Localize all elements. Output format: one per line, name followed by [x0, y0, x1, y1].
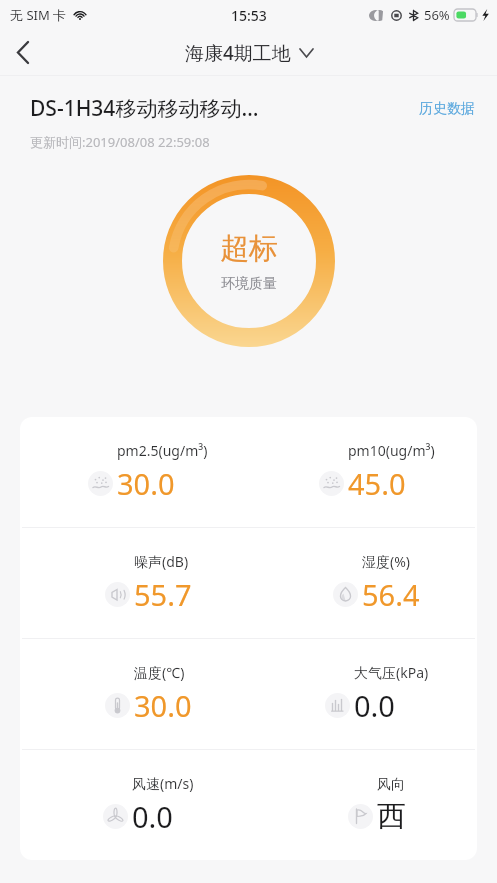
staticText: 0.0 — [132, 797, 173, 836]
button[interactable]: 海康4期工地 — [185, 40, 313, 66]
staticText: 历史数据 — [419, 100, 475, 118]
staticText: 无 SIM 卡 — [10, 6, 67, 24]
button[interactable]: 风向 — [248, 750, 477, 860]
staticText: 15:53 — [231, 6, 267, 25]
staticText: 0.0 — [354, 686, 395, 725]
staticText: pm10(ug/m³) — [348, 441, 435, 460]
staticText: 30.0 — [134, 686, 192, 725]
staticText: 45.0 — [348, 464, 406, 503]
button[interactable]: pm2.5(ug/m³) — [20, 417, 248, 527]
button[interactable]: Back — [0, 30, 46, 75]
button[interactable]: 温度(℃) — [20, 639, 248, 749]
staticText: 超标 — [220, 230, 278, 267]
staticText: 风速(m/s) — [132, 774, 194, 793]
staticText: pm2.5(ug/m³) — [117, 441, 208, 460]
button[interactable]: 噪声(dB) — [20, 528, 248, 638]
staticText: 海康4期工地 — [185, 40, 291, 66]
staticText: 更新时间:2019/08/08 22:59:08 — [30, 133, 210, 151]
staticText: 55.7 — [134, 575, 192, 614]
button[interactable]: 湿度(%) — [248, 528, 477, 638]
staticText: 56.4 — [362, 575, 420, 614]
button[interactable]: 大气压(kPa) — [248, 639, 477, 749]
staticText: 56% — [424, 6, 450, 24]
staticText: 噪声(dB) — [134, 552, 189, 571]
button[interactable]: 风速(m/s) — [20, 750, 248, 860]
button[interactable]: 历史数据 — [417, 96, 477, 122]
staticText: 风向 — [377, 776, 405, 794]
staticText: 大气压(kPa) — [354, 663, 429, 682]
staticText: 温度(℃) — [134, 663, 185, 682]
staticText: DS-1H34移动移动移动… — [30, 94, 259, 123]
staticText: 西 — [377, 798, 406, 835]
button[interactable]: pm10(ug/m³) — [248, 417, 477, 527]
staticText: 30.0 — [117, 464, 175, 503]
staticText: 湿度(%) — [362, 552, 411, 571]
staticText: 环境质量 — [221, 275, 277, 293]
